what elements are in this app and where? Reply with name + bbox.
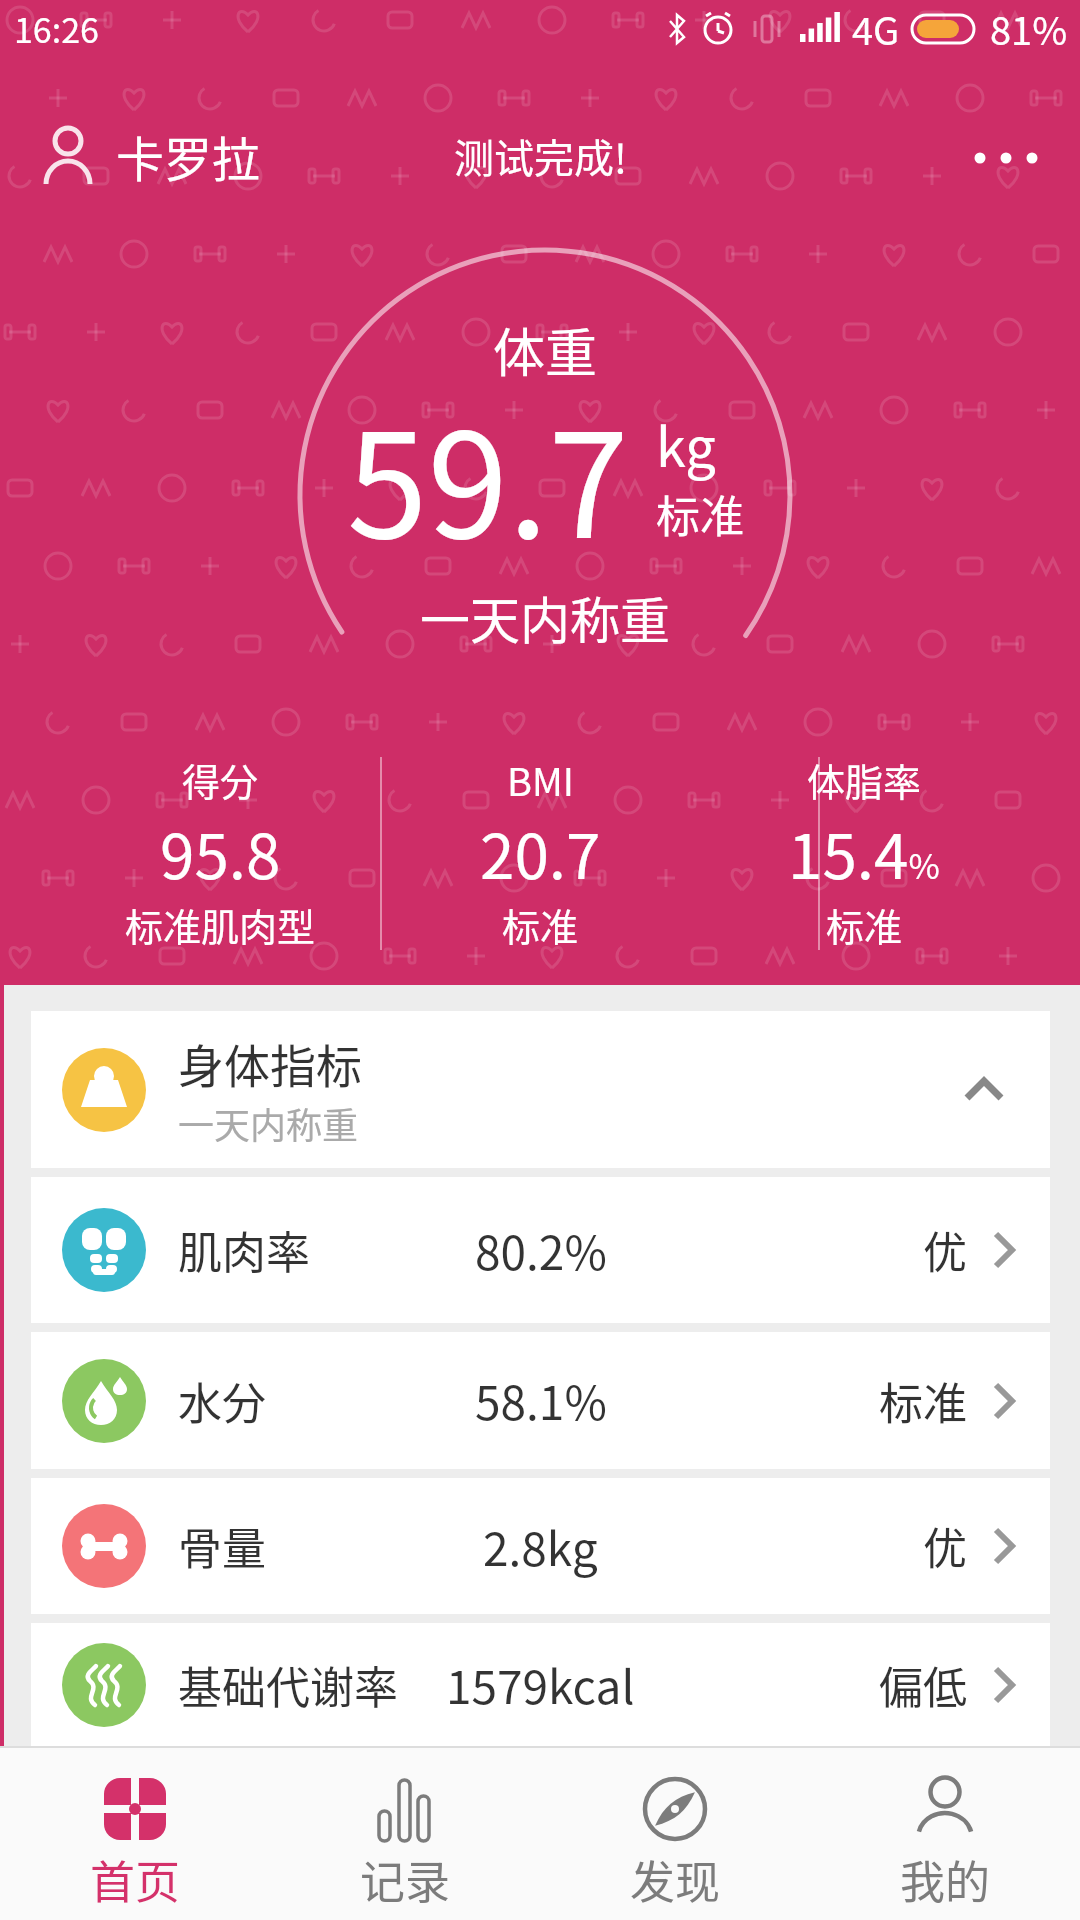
staticText: 发现 [630, 1847, 721, 1912]
staticText: 标准 [826, 897, 903, 952]
button[interactable]: 记录 [270, 1746, 540, 1920]
staticText: 优 [923, 1218, 967, 1282]
button[interactable] [42, 125, 94, 187]
staticText: 水分 [178, 1369, 266, 1433]
staticText: kg [656, 404, 716, 482]
staticText: 首页 [90, 1847, 181, 1912]
staticText: 一天内称重 [178, 1097, 359, 1149]
staticText: 身体指标 [178, 1030, 362, 1097]
staticText: 得分 [182, 752, 259, 807]
staticText: 95.8 [160, 807, 281, 897]
button[interactable]: 基础代谢率 [31, 1623, 1050, 1746]
staticText: 基础代谢率 [178, 1653, 398, 1717]
staticText: BMI [507, 752, 574, 807]
staticText: 80.2% [475, 1217, 607, 1284]
button[interactable]: 我的 [810, 1746, 1080, 1920]
staticText: 偏低 [879, 1653, 967, 1717]
staticText: 记录 [360, 1847, 451, 1912]
staticText: 标准 [656, 482, 744, 546]
staticText: 优 [923, 1514, 967, 1578]
staticText: 体脂率 [807, 752, 922, 807]
button[interactable]: 首页 [0, 1746, 270, 1920]
button[interactable]: 水分 [31, 1332, 1050, 1469]
button[interactable]: 骨量 [31, 1478, 1050, 1614]
staticText: 一天内称重 [420, 581, 670, 653]
staticText: 骨量 [178, 1514, 266, 1578]
staticText: 2.8kg [483, 1513, 598, 1580]
staticText: 我的 [900, 1847, 991, 1912]
button[interactable] [972, 150, 1044, 166]
staticText: 肌肉率 [178, 1218, 310, 1282]
staticText: 标准 [502, 897, 579, 952]
button[interactable]: 发现 [540, 1746, 810, 1920]
staticText: 标准肌肉型 [125, 897, 316, 952]
staticText: 体重 [493, 312, 598, 387]
staticText: 16:26 [14, 4, 99, 53]
staticText: 1579kcal [446, 1651, 635, 1718]
staticText: 卡罗拉 [116, 121, 261, 191]
staticText: 58.1% [475, 1367, 607, 1434]
button[interactable]: 身体指标 [31, 1011, 1050, 1168]
staticText: 81% [990, 1, 1068, 56]
staticText: 测试完成! [454, 127, 627, 185]
staticText: 20.7 [480, 807, 601, 897]
button[interactable]: 肌肉率 [31, 1177, 1050, 1323]
staticText: 59.7 [347, 370, 629, 580]
staticText: 15.4% [788, 807, 940, 897]
staticText: 4G [852, 1, 900, 56]
staticText: 标准 [879, 1369, 967, 1433]
